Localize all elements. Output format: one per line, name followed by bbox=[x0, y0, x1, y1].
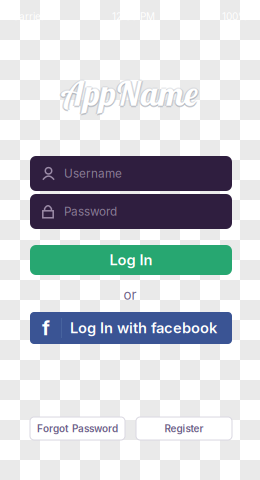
staticText: AppName bbox=[62, 72, 197, 114]
staticText: Log In bbox=[109, 251, 152, 269]
staticText: AppName bbox=[62, 70, 197, 113]
button[interactable]: Log In bbox=[30, 245, 232, 275]
staticText: 12:30 PM bbox=[112, 10, 155, 23]
staticText: 100% bbox=[222, 10, 248, 23]
staticText: Carrier bbox=[12, 10, 45, 23]
staticText: Forgot Password bbox=[37, 422, 118, 435]
button[interactable]: Forgot Password bbox=[30, 417, 125, 440]
staticText: Log In with facebook bbox=[70, 319, 217, 337]
staticText: f bbox=[42, 316, 50, 340]
button[interactable]: f bbox=[30, 312, 232, 344]
staticText: Password bbox=[64, 204, 117, 219]
staticText: Username bbox=[64, 166, 122, 181]
staticText: or bbox=[123, 287, 136, 303]
staticText: Register bbox=[164, 422, 203, 435]
staticText: AppName bbox=[62, 73, 197, 116]
button[interactable]: Register bbox=[136, 417, 232, 440]
staticText: AppName bbox=[61, 72, 196, 114]
staticText: AppName bbox=[64, 72, 199, 114]
